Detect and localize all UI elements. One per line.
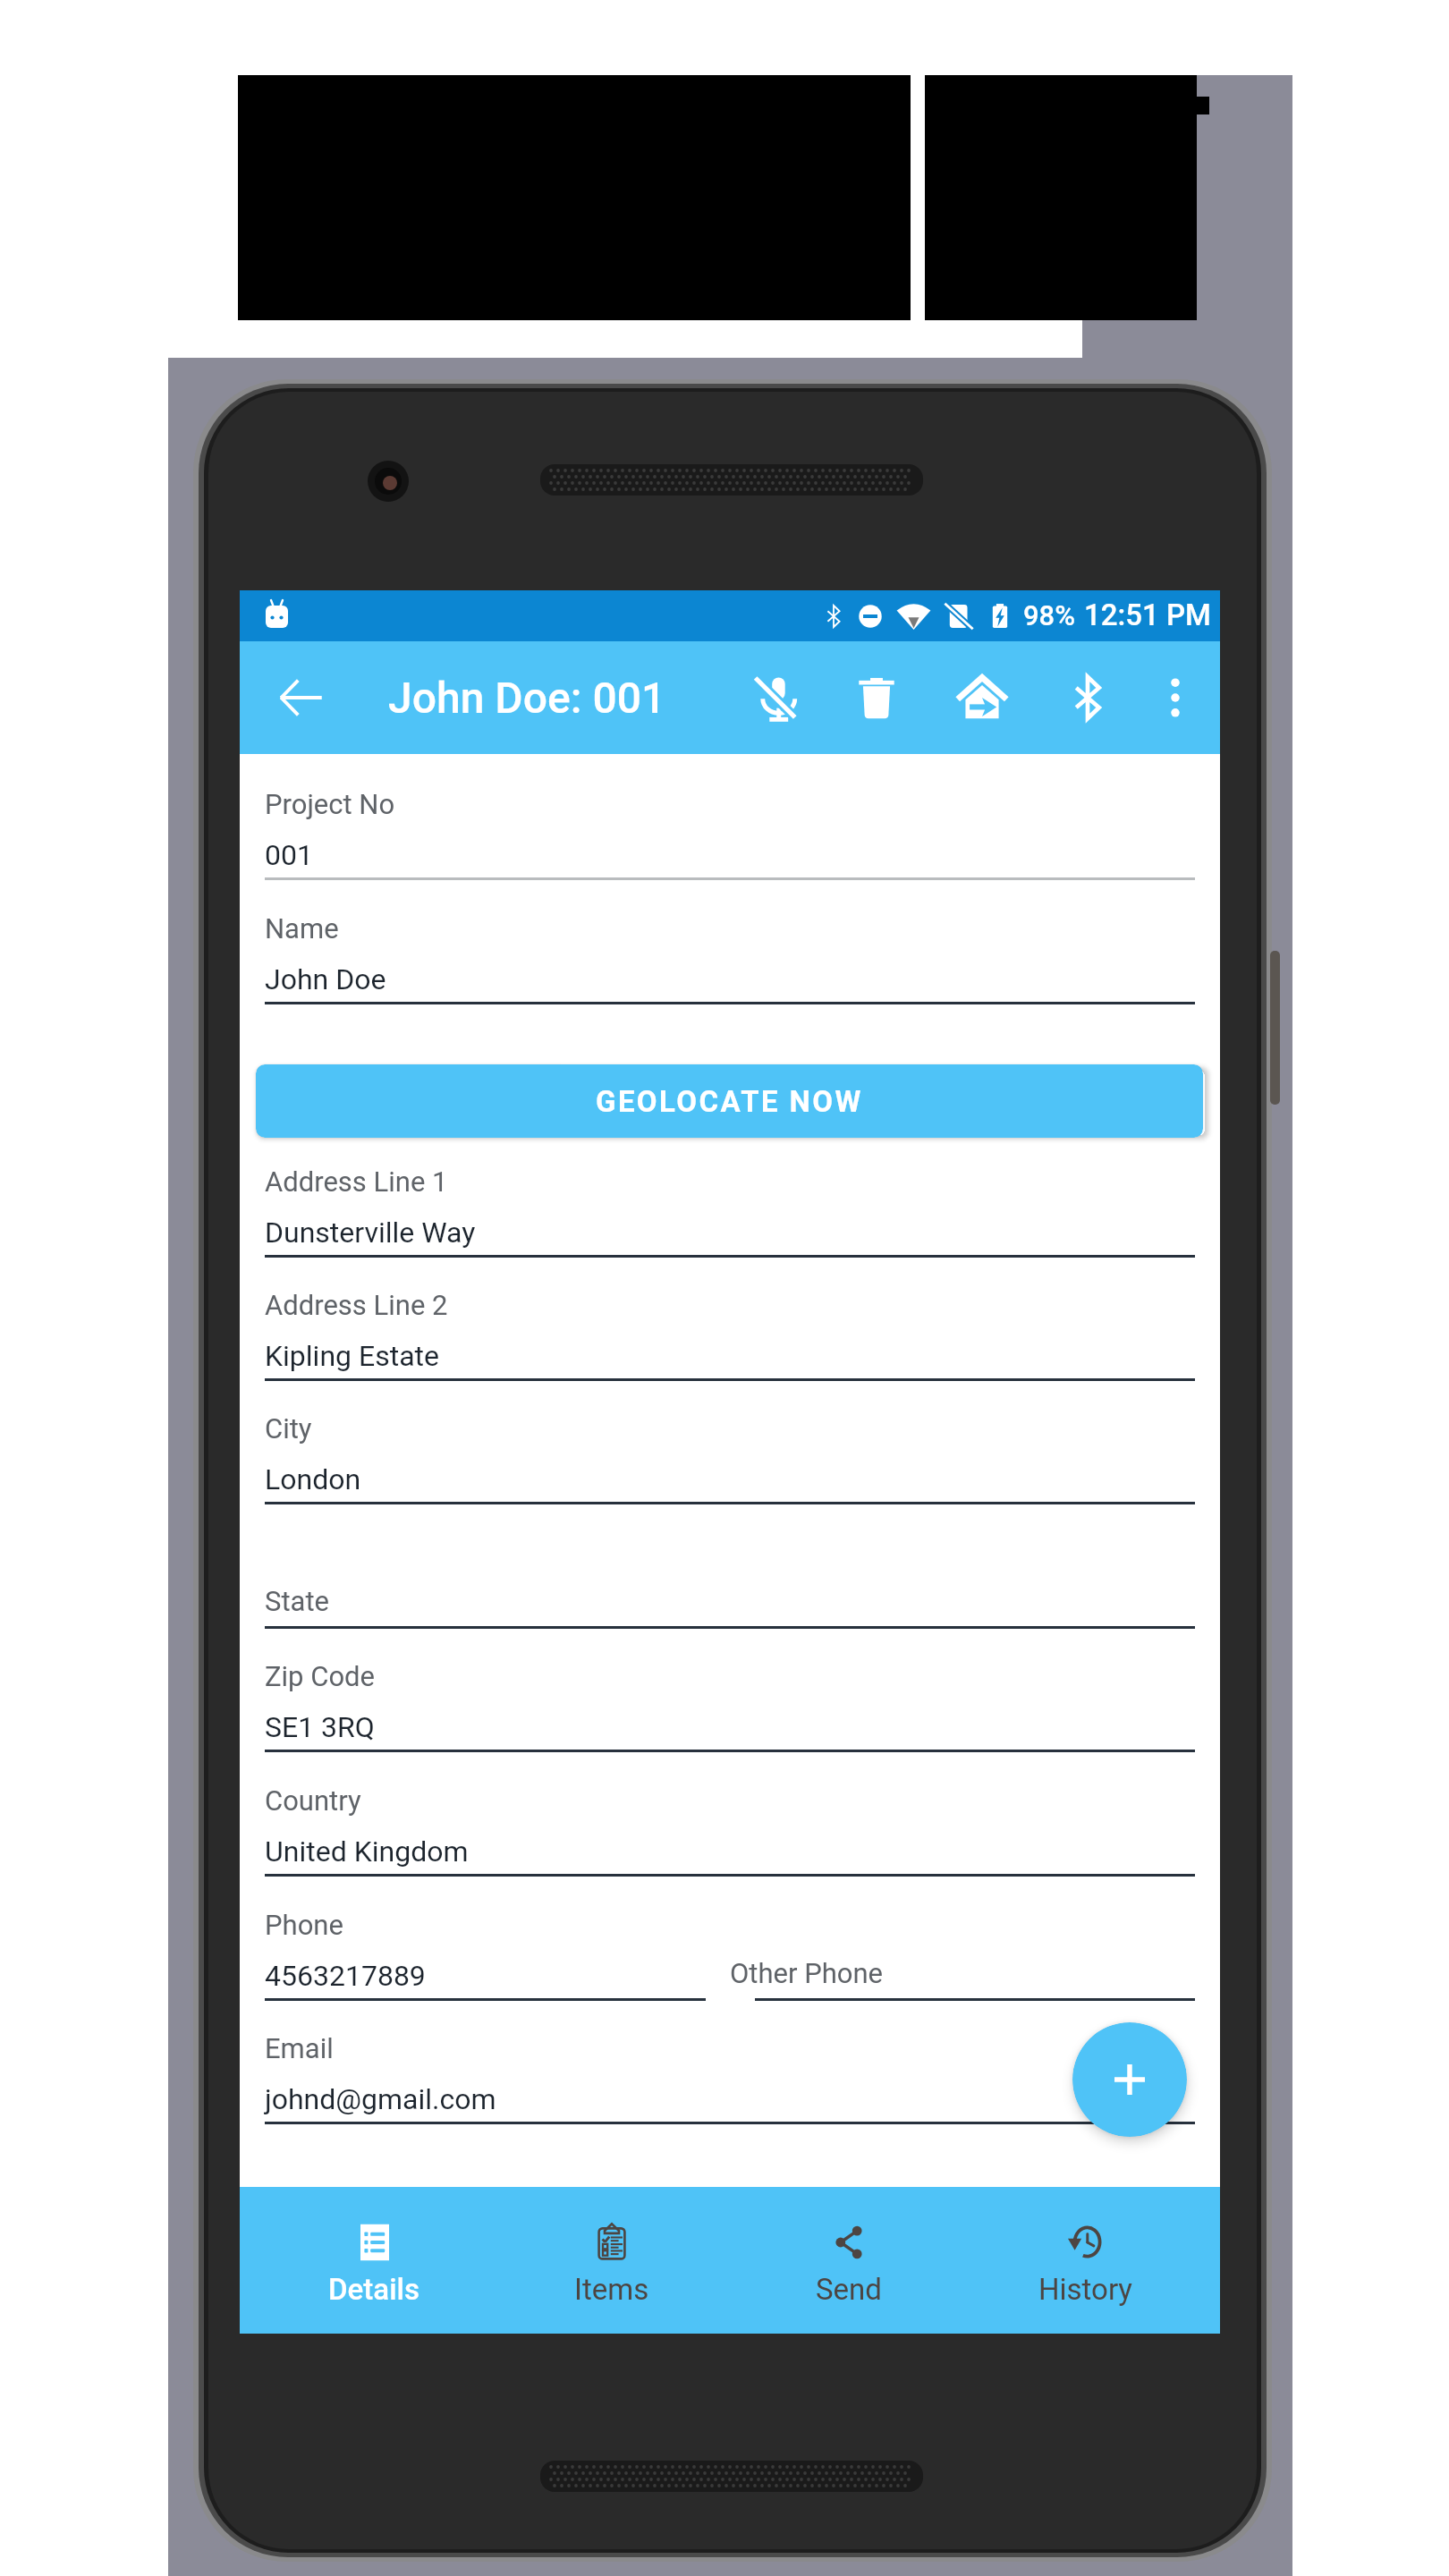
staticText: John Doe: 001 bbox=[388, 673, 666, 723]
button[interactable]: Send bbox=[730, 2187, 967, 2334]
staticText: Dunsterville Way bbox=[265, 1216, 476, 1250]
staticText: 4563217889 bbox=[265, 1959, 426, 1993]
staticText: Address Line 2 bbox=[265, 1289, 448, 1321]
staticText: Other Phone bbox=[730, 1957, 884, 1989]
button[interactable]: More options bbox=[1131, 641, 1220, 754]
staticText: GEOLOCATE NOW bbox=[596, 1084, 863, 1119]
staticText: John Doe bbox=[265, 962, 386, 996]
staticText: Send bbox=[816, 2272, 882, 2307]
staticText: Project No bbox=[265, 788, 395, 820]
staticText: 12:51 PM bbox=[1084, 597, 1211, 632]
staticText: Address Line 1 bbox=[265, 1165, 448, 1198]
button[interactable]: Home bbox=[937, 641, 1027, 754]
button[interactable]: Add bbox=[1072, 2022, 1187, 2137]
button[interactable]: Bluetooth bbox=[1043, 641, 1132, 754]
staticText: Name bbox=[265, 912, 339, 945]
staticText: London bbox=[265, 1462, 361, 1496]
staticText: City bbox=[265, 1412, 312, 1445]
button[interactable]: History bbox=[967, 2187, 1204, 2334]
staticText: johnd@gmail.com bbox=[265, 2082, 496, 2116]
staticText: United Kingdom bbox=[265, 1835, 469, 1868]
staticText: State bbox=[265, 1585, 329, 1617]
button[interactable]: GEOLOCATE NOW bbox=[256, 1064, 1203, 1138]
staticText: 98% bbox=[1023, 599, 1076, 631]
staticText: Items bbox=[574, 2272, 649, 2307]
button[interactable]: Back bbox=[258, 641, 343, 754]
button[interactable]: Details bbox=[256, 2187, 493, 2334]
staticText: Email bbox=[265, 2032, 334, 2064]
staticText: Country bbox=[265, 1784, 361, 1817]
staticText: Kipling Estate bbox=[265, 1339, 439, 1373]
button[interactable]: Items bbox=[493, 2187, 730, 2334]
staticText: 001 bbox=[265, 838, 313, 872]
staticText: Zip Code bbox=[265, 1660, 375, 1692]
staticText: Details bbox=[328, 2272, 420, 2307]
staticText: History bbox=[1038, 2272, 1132, 2307]
staticText: SE1 3RQ bbox=[265, 1710, 375, 1744]
button[interactable]: Delete bbox=[832, 641, 921, 754]
staticText: Phone bbox=[265, 1909, 343, 1941]
button[interactable]: Mute microphone bbox=[733, 641, 822, 754]
